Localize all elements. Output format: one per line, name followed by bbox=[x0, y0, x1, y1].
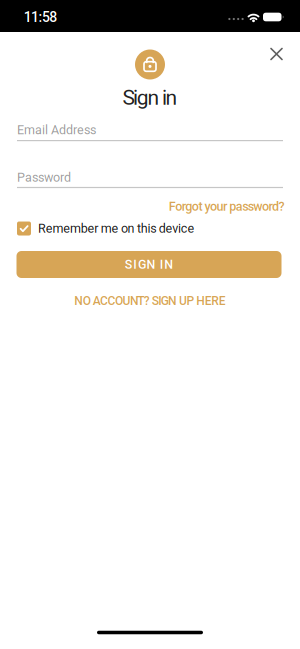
button[interactable]: Remember me on this device bbox=[17, 221, 194, 236]
staticText: 11:58 bbox=[24, 9, 57, 25]
button[interactable]: SIGN IN bbox=[16, 251, 281, 278]
staticText: Sign in bbox=[122, 85, 178, 110]
button[interactable]: NO ACCOUNT? SIGN UP HERE bbox=[74, 294, 226, 308]
staticText: Forgot your password? bbox=[169, 199, 284, 214]
staticText: Password bbox=[17, 170, 71, 185]
button[interactable]: Forgot your password? bbox=[169, 199, 284, 214]
button[interactable]: Close bbox=[264, 41, 289, 66]
staticText: NO ACCOUNT? SIGN UP HERE bbox=[74, 294, 226, 308]
staticText: Remember me on this device bbox=[38, 221, 194, 236]
staticText: Email Address bbox=[17, 123, 96, 137]
staticText: SIGN IN bbox=[125, 257, 173, 272]
